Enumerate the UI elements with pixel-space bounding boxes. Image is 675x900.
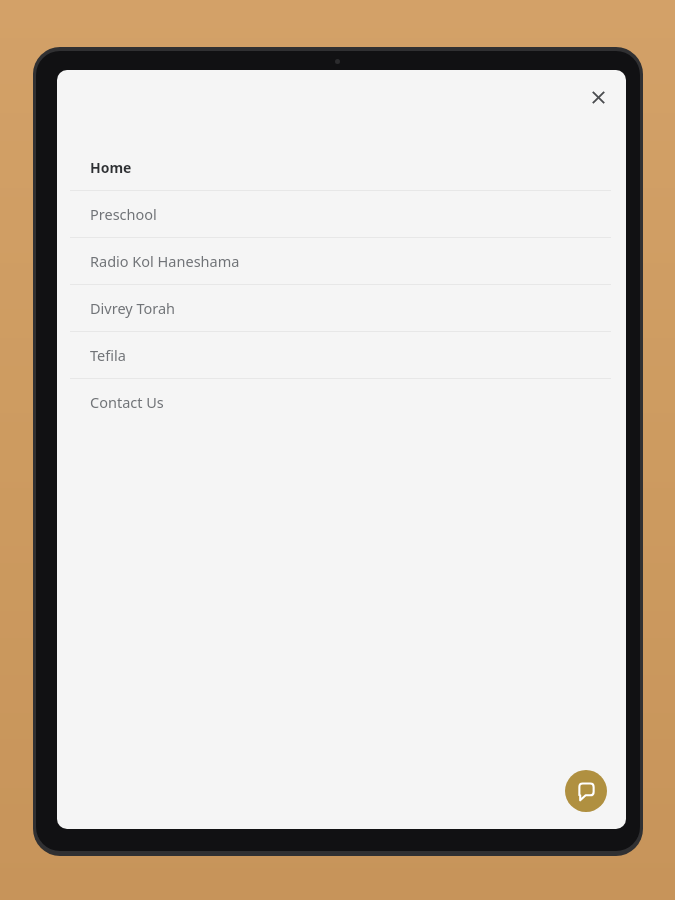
staticText: Divrey Torah: [90, 298, 176, 318]
button[interactable]: Tefila: [57, 332, 626, 378]
staticText: Preschool: [90, 204, 157, 224]
staticText: Tefila: [90, 345, 126, 365]
button[interactable]: Open chat: [565, 770, 607, 812]
button[interactable]: Divrey Torah: [57, 285, 626, 331]
button[interactable]: Contact Us: [57, 379, 626, 425]
staticText: Contact Us: [90, 392, 164, 412]
button[interactable]: Close menu: [580, 79, 616, 115]
button[interactable]: Preschool: [57, 191, 626, 237]
button[interactable]: Home: [57, 144, 626, 190]
staticText: Home: [90, 158, 132, 177]
staticText: Radio Kol Haneshama: [90, 251, 240, 271]
button[interactable]: Radio Kol Haneshama: [57, 238, 626, 284]
